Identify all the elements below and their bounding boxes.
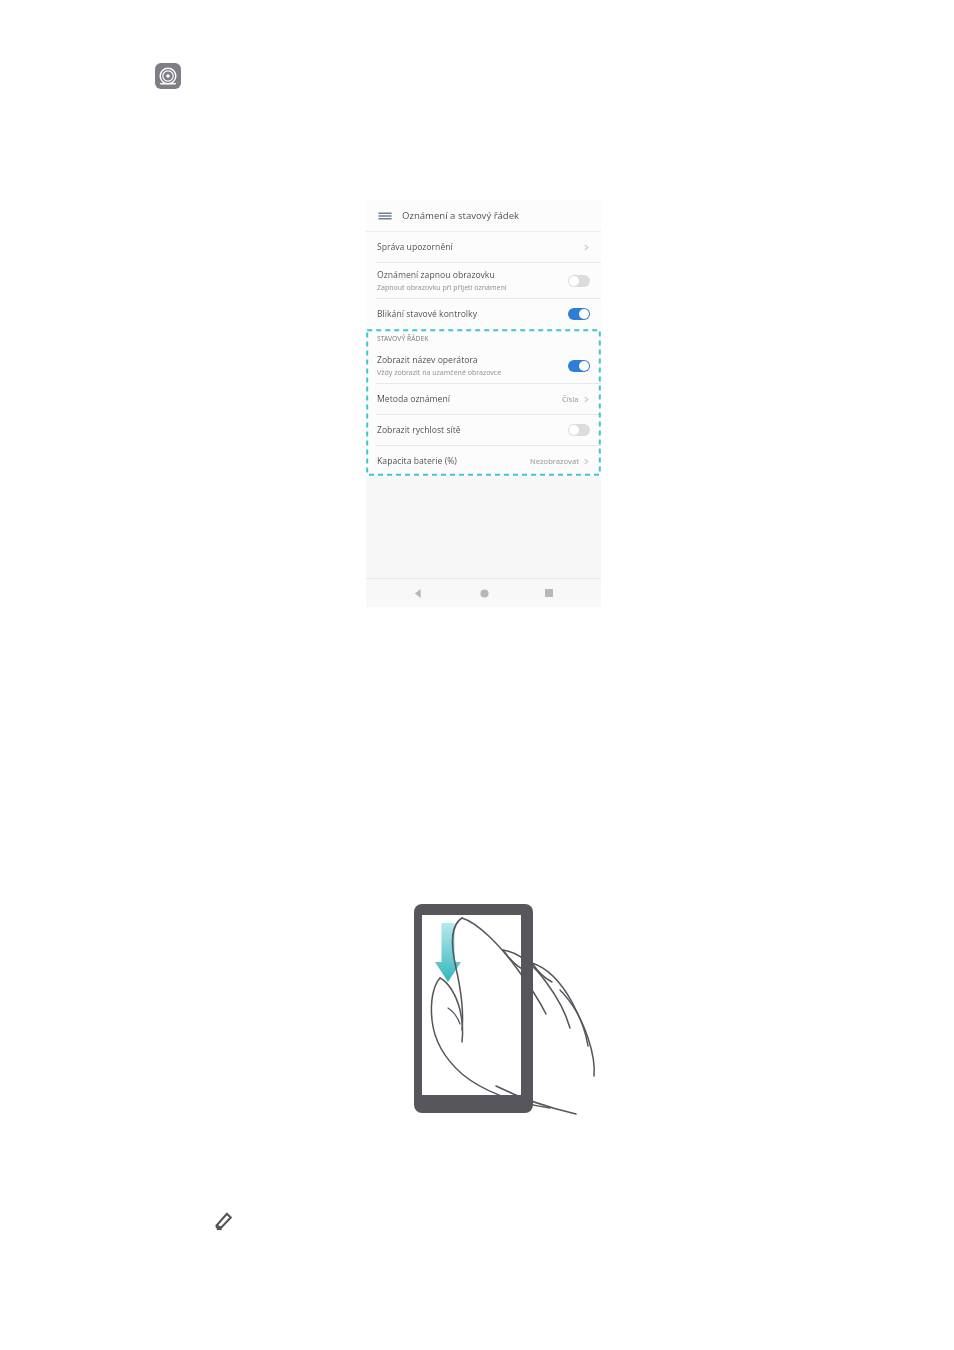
staticText: Oznámení a stavový řádek xyxy=(402,209,520,222)
staticText: Blikání stavové kontrolky xyxy=(377,308,478,320)
staticText: Kapacita baterie (%) xyxy=(377,455,457,467)
button[interactable]: Zobrazit rychlost sítě xyxy=(366,415,601,445)
button[interactable]: App icon xyxy=(155,63,181,89)
button[interactable]: Off xyxy=(568,275,590,287)
staticText: Oznámení zapnou obrazovku xyxy=(377,269,495,281)
staticText: Zapnout obrazovku při přijetí oznámení xyxy=(377,283,507,293)
staticText: Zobrazit název operátora xyxy=(377,354,478,366)
staticText: Vždy zobrazit na uzamčené obrazovce xyxy=(377,368,502,378)
button[interactable]: Edit xyxy=(212,1208,236,1232)
button[interactable]: Oznámení zapnou obrazovku xyxy=(366,263,601,298)
button[interactable]: Off xyxy=(568,424,590,436)
button[interactable]: Správa upozornění xyxy=(366,232,601,262)
staticText: Čísla xyxy=(562,394,579,404)
staticText: Nezobrazovat xyxy=(530,456,579,466)
staticText: STAVOVÝ ŘÁDEK xyxy=(377,334,429,343)
button[interactable]: Menu xyxy=(366,200,601,231)
button[interactable]: Recents xyxy=(535,579,563,607)
button[interactable]: On xyxy=(568,360,590,372)
button[interactable]: Kapacita baterie (%) xyxy=(366,446,601,476)
button[interactable]: Zobrazit název operátora xyxy=(366,348,601,383)
other: Menu xyxy=(378,209,392,223)
button[interactable]: Back xyxy=(404,579,432,607)
button[interactable]: Blikání stavové kontrolky xyxy=(366,299,601,329)
button[interactable]: On xyxy=(568,308,590,320)
staticText: Správa upozornění xyxy=(377,241,453,253)
button[interactable]: Home xyxy=(470,579,498,607)
staticText: Zobrazit rychlost sítě xyxy=(377,424,461,436)
button[interactable]: Metoda oznámení xyxy=(366,384,601,414)
staticText: Metoda oznámení xyxy=(377,393,450,405)
